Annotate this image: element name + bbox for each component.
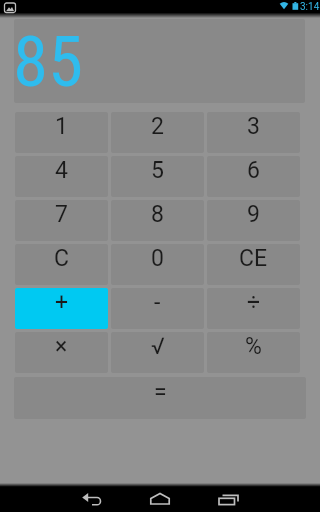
staticText: 6: [247, 157, 260, 184]
button[interactable]: 2: [111, 112, 204, 153]
button[interactable]: 9: [207, 200, 300, 241]
button[interactable]: 3: [207, 112, 300, 153]
button[interactable]: 8: [111, 200, 204, 241]
staticText: +: [55, 289, 69, 316]
button[interactable]: [212, 486, 245, 512]
button[interactable]: [75, 486, 107, 512]
button[interactable]: 0: [111, 244, 204, 285]
button[interactable]: 4: [15, 156, 108, 197]
button[interactable]: CE: [207, 244, 300, 285]
button[interactable]: 7: [15, 200, 108, 241]
staticText: 0: [151, 245, 164, 272]
staticText: 85: [14, 20, 84, 103]
staticText: 5: [151, 157, 164, 184]
button[interactable]: -: [111, 288, 204, 329]
staticText: 8: [151, 201, 164, 228]
button[interactable]: ×: [15, 332, 108, 373]
staticText: ÷: [247, 289, 261, 316]
button[interactable]: =: [14, 377, 306, 419]
staticText: ×: [55, 333, 68, 360]
staticText: 3: [247, 113, 260, 140]
button[interactable]: C: [15, 244, 108, 285]
button[interactable]: √: [111, 332, 204, 373]
staticText: 2: [151, 113, 164, 140]
button[interactable]: ÷: [207, 288, 300, 329]
staticText: C: [54, 245, 69, 272]
staticText: 3:14: [300, 1, 320, 13]
staticText: CE: [239, 245, 268, 272]
staticText: 9: [247, 201, 260, 228]
staticText: √: [151, 333, 165, 360]
staticText: 4: [55, 157, 68, 184]
button[interactable]: 1: [15, 112, 108, 153]
button[interactable]: 5: [111, 156, 204, 197]
staticText: -: [154, 289, 161, 316]
button[interactable]: %: [207, 332, 300, 373]
button[interactable]: +: [15, 288, 108, 329]
staticText: =: [154, 379, 167, 406]
staticText: %: [245, 333, 262, 360]
button[interactable]: [144, 486, 176, 512]
staticText: 7: [55, 201, 68, 228]
button[interactable]: 6: [207, 156, 300, 197]
staticText: 1: [55, 113, 68, 140]
